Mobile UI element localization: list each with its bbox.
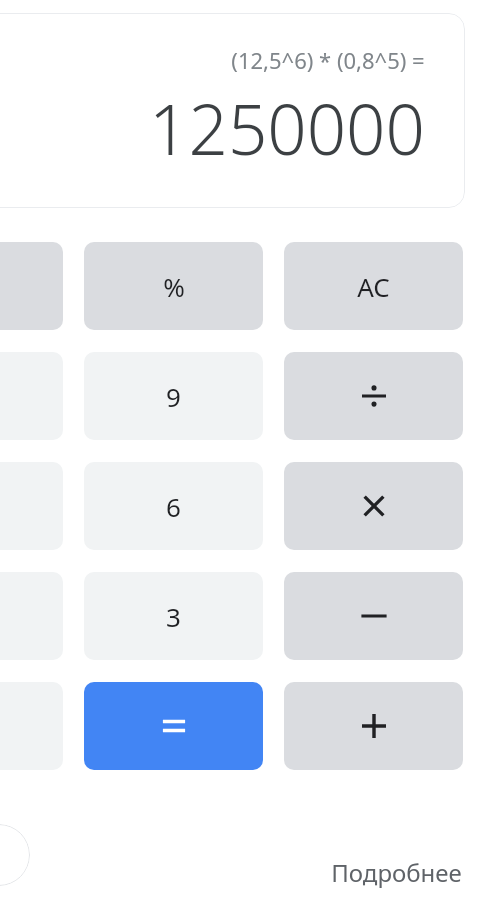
button[interactable]: 6 [84,462,263,550]
staticText: AC [357,269,390,304]
button[interactable]: 3 [84,572,263,660]
staticText: % [163,269,185,304]
button[interactable]: AC [284,242,463,330]
button[interactable]: Divide [284,352,463,440]
button[interactable]: Подробнее [318,852,475,892]
staticText: (12,5^6) * (0,8^5) = [231,45,425,75]
button[interactable]: (12,5^6) * (0,8^5) = [0,13,465,208]
staticText: 9 [166,379,181,414]
button[interactable]: Multiply [284,462,463,550]
staticText: 1250000 [149,81,425,175]
button[interactable]: 9 [84,352,263,440]
button[interactable] [0,242,63,330]
button[interactable]: % [84,242,263,330]
button[interactable]: Menu [0,824,30,886]
button[interactable]: Add [284,682,463,770]
staticText: 6 [166,489,181,524]
staticText: 3 [166,599,181,634]
button[interactable]: Equals [84,682,263,770]
staticText: Подробнее [331,856,462,889]
button[interactable]: Subtract [284,572,463,660]
